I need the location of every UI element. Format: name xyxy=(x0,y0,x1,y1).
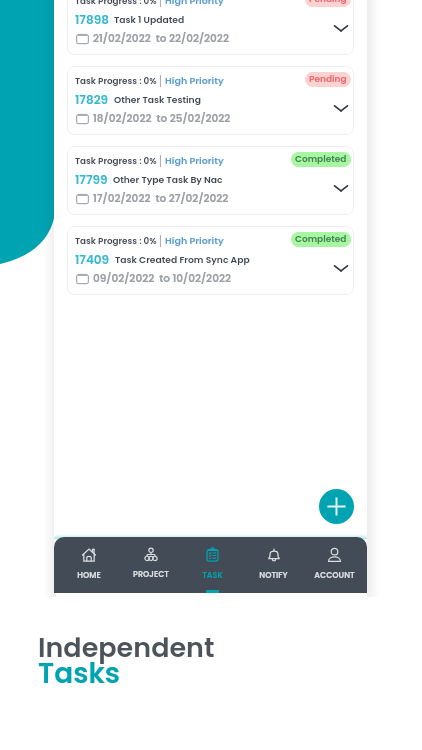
staticText: High Priority xyxy=(165,154,224,167)
button[interactable]: Expand task xyxy=(332,259,350,277)
staticText: 17/02/2022 to 27/02/2022 xyxy=(93,191,229,206)
staticText: High Priority xyxy=(165,0,224,7)
staticText: Task Progress : 0% xyxy=(75,235,157,247)
staticText: HOME xyxy=(77,570,101,581)
button[interactable]: Task Progress : 0% xyxy=(67,146,354,215)
button[interactable]: Pending xyxy=(305,0,351,7)
staticText: PROJECT xyxy=(133,569,169,580)
staticText: High Priority xyxy=(165,74,224,87)
staticText: Independent xyxy=(38,629,215,667)
button[interactable]: PROJECT xyxy=(120,537,182,593)
staticText: Task Progress : 0% xyxy=(75,155,157,167)
staticText: 18/02/2022 to 25/02/2022 xyxy=(93,111,231,126)
staticText: 17829 xyxy=(75,91,109,108)
button[interactable]: Task Progress : 0% xyxy=(67,226,354,295)
staticText: 09/02/2022 to 10/02/2022 xyxy=(93,271,231,286)
button[interactable]: TASK xyxy=(182,537,243,593)
staticText: Pending xyxy=(309,0,347,6)
button[interactable]: Completed xyxy=(291,232,351,247)
button[interactable]: Expand task xyxy=(332,179,350,197)
staticText: Task 1 Updated xyxy=(114,13,185,26)
button[interactable]: Add new task xyxy=(319,489,354,524)
staticText: Tasks xyxy=(38,654,121,693)
staticText: NOTIFY xyxy=(259,570,288,581)
staticText: Other Task Testing xyxy=(114,93,201,106)
button[interactable]: HOME xyxy=(58,537,120,593)
staticText: Completed xyxy=(295,153,347,166)
button[interactable]: Pending xyxy=(305,72,351,87)
button[interactable]: Task Progress : 0% xyxy=(67,0,354,55)
staticText: Other Type Task By Nac xyxy=(113,173,223,186)
staticText: 17799 xyxy=(75,171,108,188)
staticText: Completed xyxy=(295,233,347,246)
staticText: High Priority xyxy=(165,234,224,247)
staticText: ACCOUNT xyxy=(314,570,355,581)
staticText: 21/02/2022 to 22/02/2022 xyxy=(93,31,229,46)
staticText: TASK xyxy=(202,570,223,581)
staticText: Pending xyxy=(309,73,347,86)
button[interactable]: Expand task xyxy=(332,19,350,37)
staticText: Task Progress : 0% xyxy=(75,0,157,7)
button[interactable]: NOTIFY xyxy=(243,537,304,593)
staticText: 17409 xyxy=(75,251,110,268)
button[interactable]: Task Progress : 0% xyxy=(67,66,354,135)
staticText: Task Progress : 0% xyxy=(75,75,157,87)
button[interactable]: ACCOUNT xyxy=(304,537,365,593)
staticText: Task Created From Sync App xyxy=(115,253,250,266)
staticText: 17898 xyxy=(75,11,109,28)
button[interactable]: Completed xyxy=(291,152,351,167)
button[interactable]: Expand task xyxy=(332,99,350,117)
